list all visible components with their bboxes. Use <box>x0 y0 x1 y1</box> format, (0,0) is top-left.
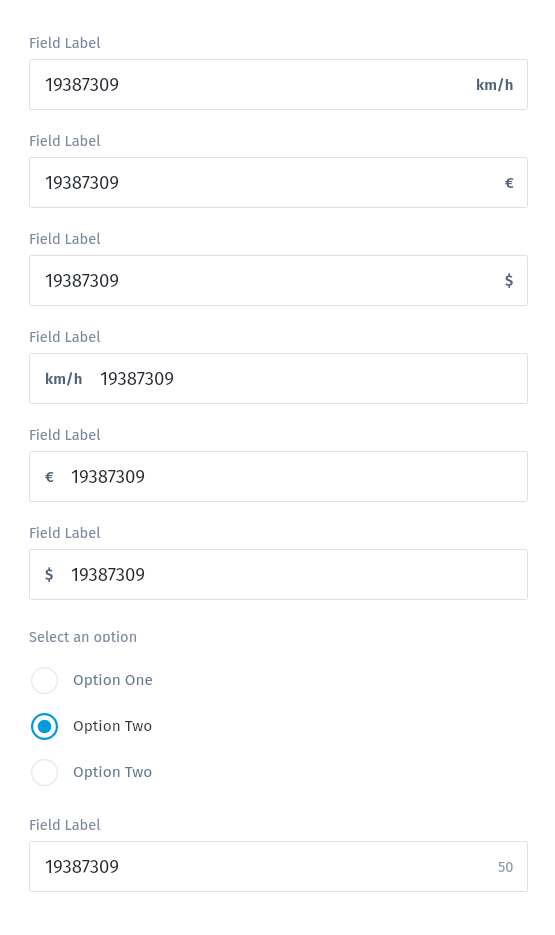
staticText: $ <box>45 566 54 584</box>
staticText: Field Label <box>29 524 101 538</box>
button[interactable]: 19387309 <box>29 59 528 110</box>
other: Radio button <box>31 759 58 786</box>
button[interactable]: Radio button <box>29 749 526 795</box>
staticText: Field Label <box>29 230 101 244</box>
staticText: Option Two <box>73 717 153 735</box>
button[interactable]: € <box>29 451 528 502</box>
button[interactable]: Radio button <box>29 657 526 703</box>
staticText: 19387309 <box>71 466 145 488</box>
button[interactable]: 19387309 <box>29 841 528 892</box>
staticText: 19387309 <box>45 856 119 878</box>
staticText: € <box>505 174 514 192</box>
button[interactable]: km/h <box>29 353 528 404</box>
staticText: € <box>45 468 54 486</box>
button[interactable]: 19387309 <box>29 157 528 208</box>
staticText: Field Label <box>29 816 101 830</box>
staticText: Field Label <box>29 426 101 440</box>
staticText: 19387309 <box>71 564 145 586</box>
staticText: 19387309 <box>100 368 174 390</box>
staticText: Option One <box>73 671 153 689</box>
staticText: Field Label <box>29 132 101 146</box>
staticText: Option Two <box>73 763 153 781</box>
staticText: 19387309 <box>45 74 119 96</box>
staticText: 50 <box>498 858 514 875</box>
staticText: Select an option <box>29 628 138 642</box>
staticText: 19387309 <box>45 172 119 194</box>
staticText: Field Label <box>29 328 101 342</box>
button[interactable]: Selected radio button <box>29 703 526 749</box>
button[interactable]: $ <box>29 549 528 600</box>
staticText: $ <box>505 272 514 290</box>
staticText: km/h <box>45 370 83 388</box>
staticText: 19387309 <box>45 270 119 292</box>
other: Selected radio button <box>31 713 58 740</box>
staticText: km/h <box>476 76 514 94</box>
other: Radio button <box>31 667 58 694</box>
staticText: Field Label <box>29 34 101 48</box>
button[interactable]: 19387309 <box>29 255 528 306</box>
